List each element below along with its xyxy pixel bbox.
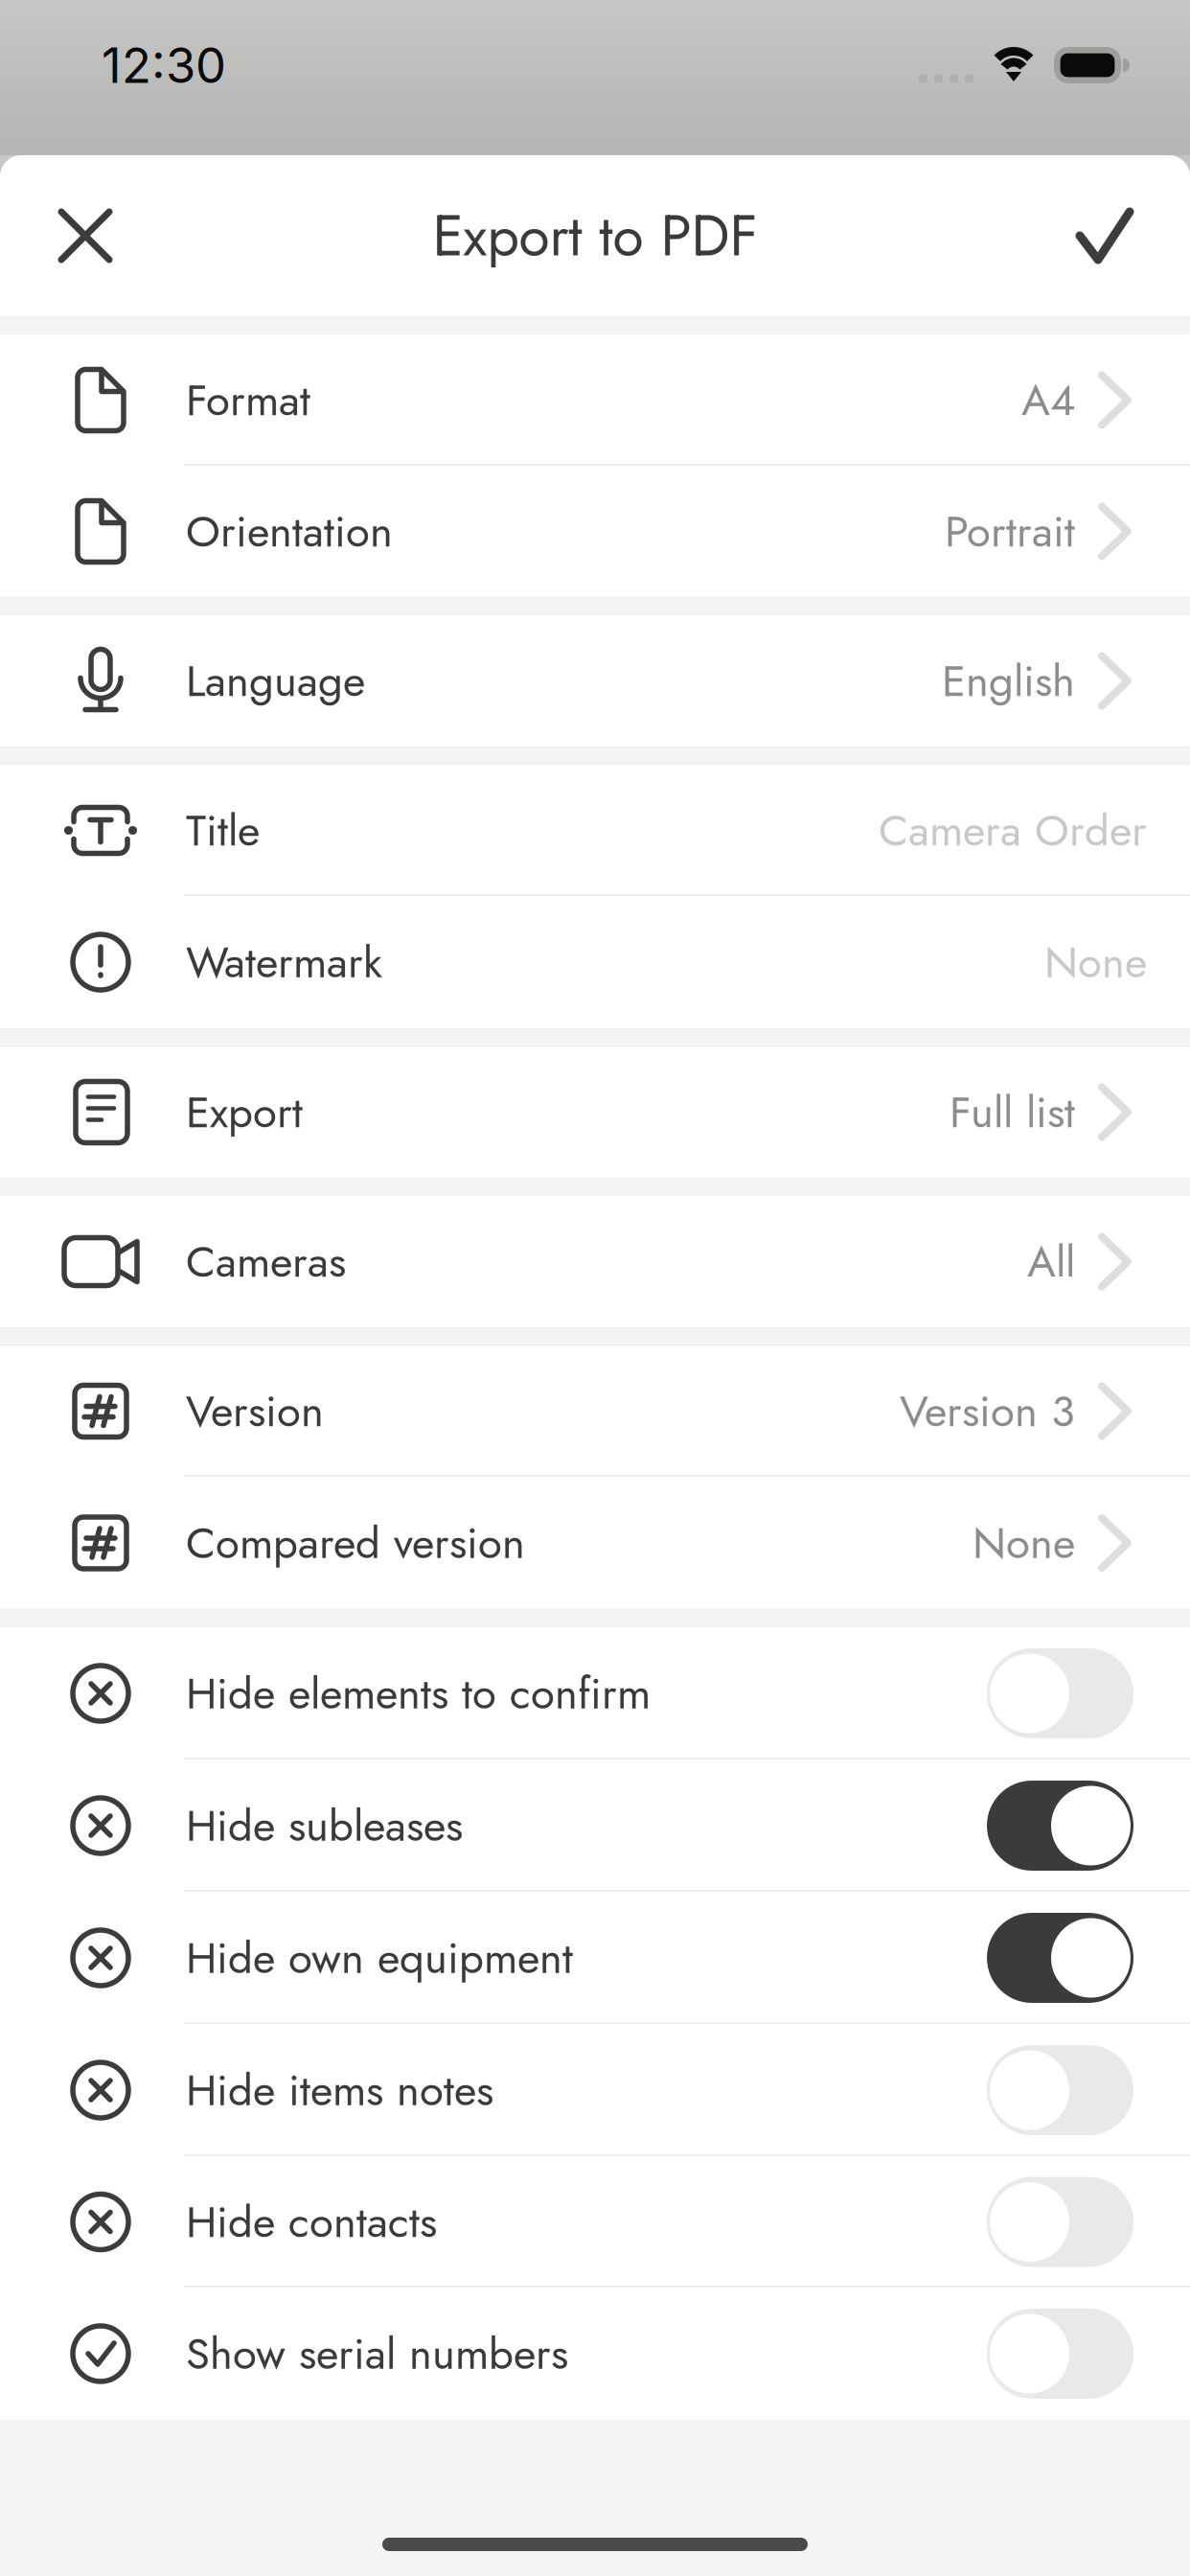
button[interactable]: Format: [0, 334, 1190, 466]
button[interactable]: Language: [0, 615, 1190, 747]
staticText: Hide items notes: [186, 2059, 493, 2121]
button[interactable]: Export: [0, 1046, 1190, 1178]
staticText: A4: [1021, 369, 1075, 431]
staticText: Version: [186, 1380, 324, 1442]
button[interactable]: Show serial numbers: [0, 2288, 1190, 2420]
staticText: Watermark: [186, 931, 382, 994]
button[interactable]: Version: [0, 1345, 1190, 1477]
staticText: Compared version: [186, 1511, 525, 1574]
staticText: Cameras: [186, 1230, 346, 1293]
staticText: Orientation: [186, 500, 393, 563]
staticText: Show serial numbers: [186, 2322, 568, 2385]
staticText: All: [1027, 1230, 1075, 1293]
button[interactable]: Watermark: [0, 896, 1190, 1028]
staticText: Portrait: [945, 500, 1075, 563]
button[interactable]: Hide subleases: [0, 1759, 1190, 1892]
staticText: Hide contacts: [186, 2190, 437, 2253]
staticText: Camera Order: [879, 799, 1147, 862]
staticText: 12:30: [102, 36, 226, 94]
staticText: Export: [186, 1081, 303, 1143]
button[interactable]: Hide items notes: [0, 2024, 1190, 2156]
staticText: None: [1044, 931, 1147, 994]
staticText: Version 3: [900, 1380, 1075, 1442]
button[interactable]: Cameras: [0, 1196, 1190, 1327]
staticText: English: [942, 649, 1075, 712]
staticText: None: [973, 1511, 1075, 1574]
button[interactable]: Hide contacts: [0, 2156, 1190, 2288]
staticText: Title: [186, 799, 260, 862]
button[interactable]: Confirm: [1047, 178, 1162, 293]
staticText: Export to PDF: [433, 195, 757, 276]
staticText: Hide elements to confirm: [186, 1662, 651, 1725]
button[interactable]: Title: [0, 765, 1190, 896]
button[interactable]: Hide elements to confirm: [0, 1627, 1190, 1759]
button[interactable]: Orientation: [0, 466, 1190, 597]
staticText: Format: [186, 369, 310, 431]
staticText: Full list: [950, 1081, 1075, 1143]
button[interactable]: Close: [28, 178, 143, 293]
button[interactable]: Hide own equipment: [0, 1892, 1190, 2024]
staticText: Hide own equipment: [186, 1926, 573, 1989]
button[interactable]: Compared version: [0, 1477, 1190, 1609]
staticText: Hide subleases: [186, 1794, 463, 1857]
staticText: Language: [186, 649, 365, 712]
